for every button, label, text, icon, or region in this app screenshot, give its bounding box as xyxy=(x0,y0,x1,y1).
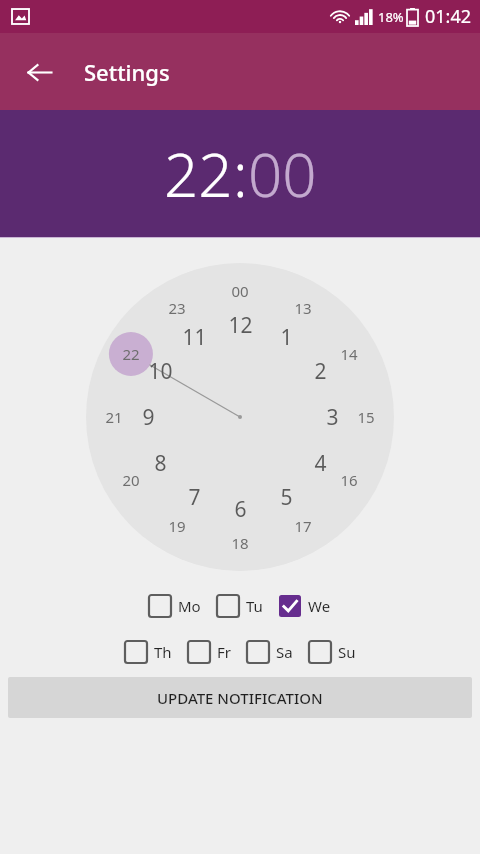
staticText: 19 xyxy=(168,516,186,536)
staticText: 21 xyxy=(105,407,123,427)
staticText: 16 xyxy=(340,470,358,490)
button[interactable]: 22 xyxy=(164,133,233,215)
button[interactable]: Tu xyxy=(215,593,265,619)
staticText: 13 xyxy=(294,298,312,318)
button[interactable]: 00 xyxy=(248,133,317,215)
staticText: 5 xyxy=(280,483,293,512)
button[interactable]: Su xyxy=(307,639,358,665)
staticText: 11 xyxy=(182,323,207,352)
staticText: 00 xyxy=(231,281,249,301)
staticText: 8 xyxy=(154,449,167,478)
staticText: Su xyxy=(338,642,356,662)
staticText: 1 xyxy=(280,323,293,352)
staticText: Settings xyxy=(84,57,170,87)
staticText: Th xyxy=(154,642,172,662)
staticText: 18% xyxy=(378,8,404,26)
staticText: Sa xyxy=(276,642,293,662)
staticText: 7 xyxy=(188,483,201,512)
button[interactable]: Fr xyxy=(186,639,233,665)
button[interactable]: Mo xyxy=(147,593,203,619)
staticText: 23 xyxy=(168,298,186,318)
staticText: We xyxy=(308,596,331,616)
staticText: Tu xyxy=(246,596,263,616)
staticText: 3 xyxy=(326,403,339,432)
staticText: 17 xyxy=(294,516,312,536)
staticText: 14 xyxy=(340,344,358,364)
staticText: 12 xyxy=(228,311,253,340)
staticText: 2 xyxy=(314,357,327,386)
staticText: UPDATE NOTIFICATION xyxy=(157,688,323,708)
staticText: 01:42 xyxy=(425,4,472,29)
staticText: 6 xyxy=(234,495,247,524)
staticText: 00 xyxy=(248,133,317,215)
staticText: 22 xyxy=(122,344,140,364)
staticText: 15 xyxy=(357,407,375,427)
staticText: 9 xyxy=(142,403,155,432)
button[interactable]: Back xyxy=(14,47,64,97)
staticText: Fr xyxy=(217,642,231,662)
staticText: 4 xyxy=(314,449,327,478)
button[interactable]: Th xyxy=(123,639,174,665)
staticText: : xyxy=(233,133,248,215)
button[interactable]: UPDATE NOTIFICATION xyxy=(8,677,472,718)
staticText: Mo xyxy=(178,596,201,616)
button[interactable] xyxy=(86,263,394,571)
button[interactable]: We xyxy=(277,593,333,619)
button[interactable]: Sa xyxy=(245,639,295,665)
staticText: 20 xyxy=(122,470,140,490)
staticText: 10 xyxy=(148,357,173,386)
staticText: 22 xyxy=(164,133,233,215)
staticText: 18 xyxy=(231,533,249,553)
